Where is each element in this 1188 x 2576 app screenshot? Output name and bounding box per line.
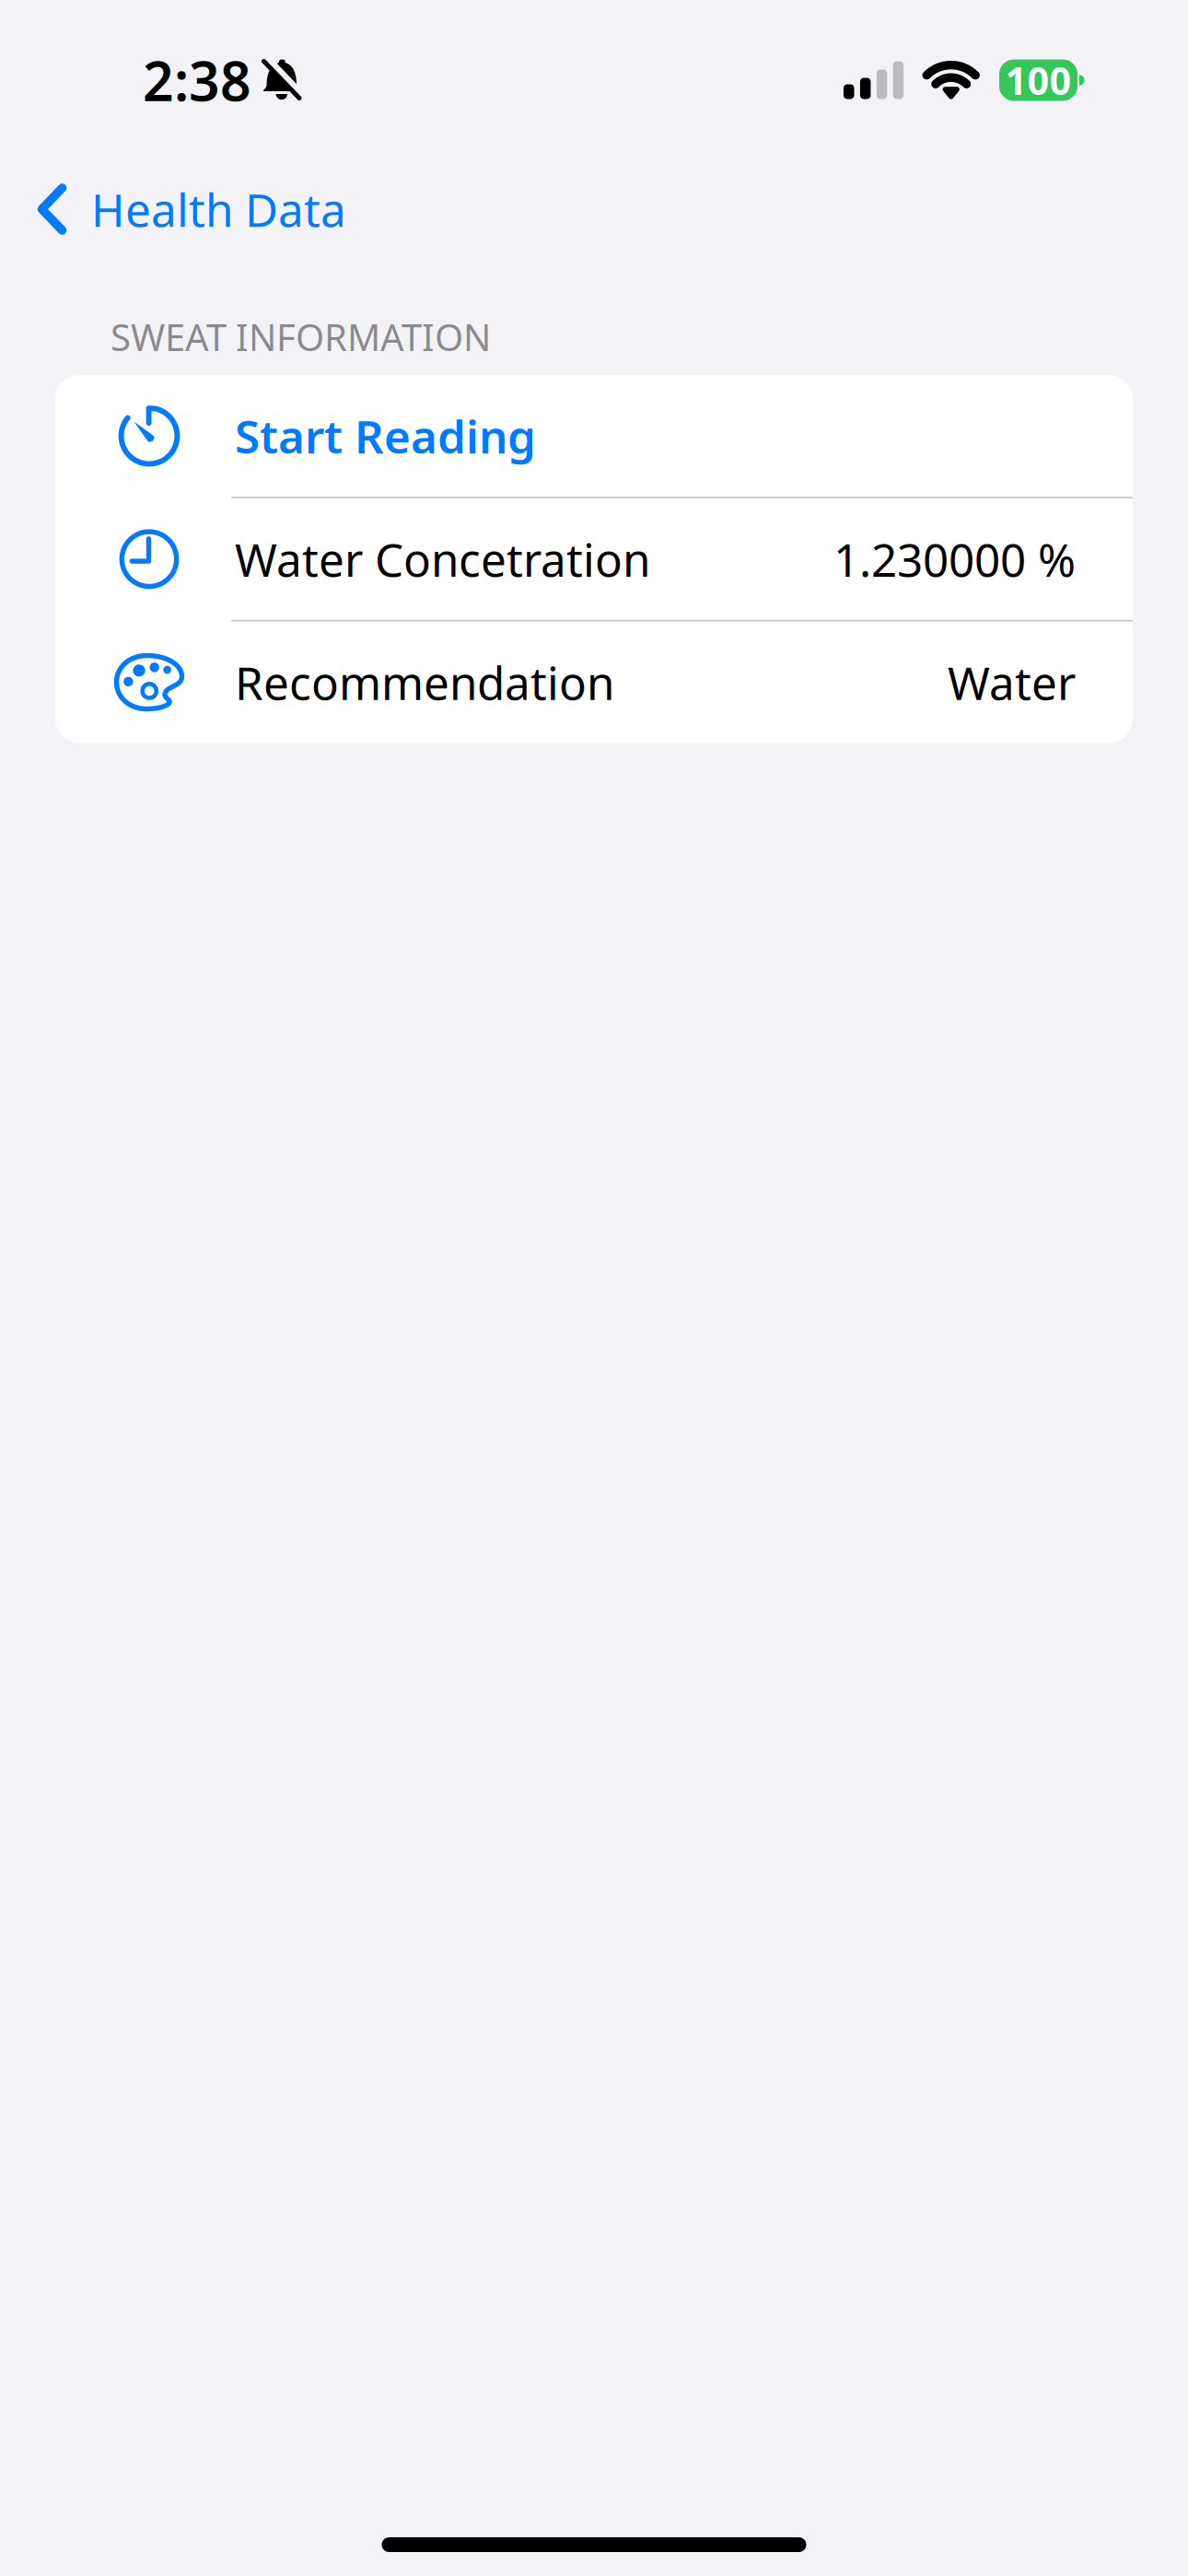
staticText: 1.230000 % xyxy=(833,529,1076,589)
staticText: Water Concetration xyxy=(235,529,650,589)
staticText: Water xyxy=(948,652,1076,712)
staticText: 100 xyxy=(1005,55,1072,105)
staticText: Recommendation xyxy=(235,652,614,712)
button[interactable]: Back to Health Data xyxy=(0,154,374,264)
button[interactable]: Start Reading xyxy=(55,375,1133,497)
staticText: Health Data xyxy=(91,179,346,239)
staticText: 2:38 xyxy=(143,44,251,116)
staticText: Start Reading xyxy=(235,406,536,466)
staticText: SWEAT INFORMATION xyxy=(111,312,491,361)
